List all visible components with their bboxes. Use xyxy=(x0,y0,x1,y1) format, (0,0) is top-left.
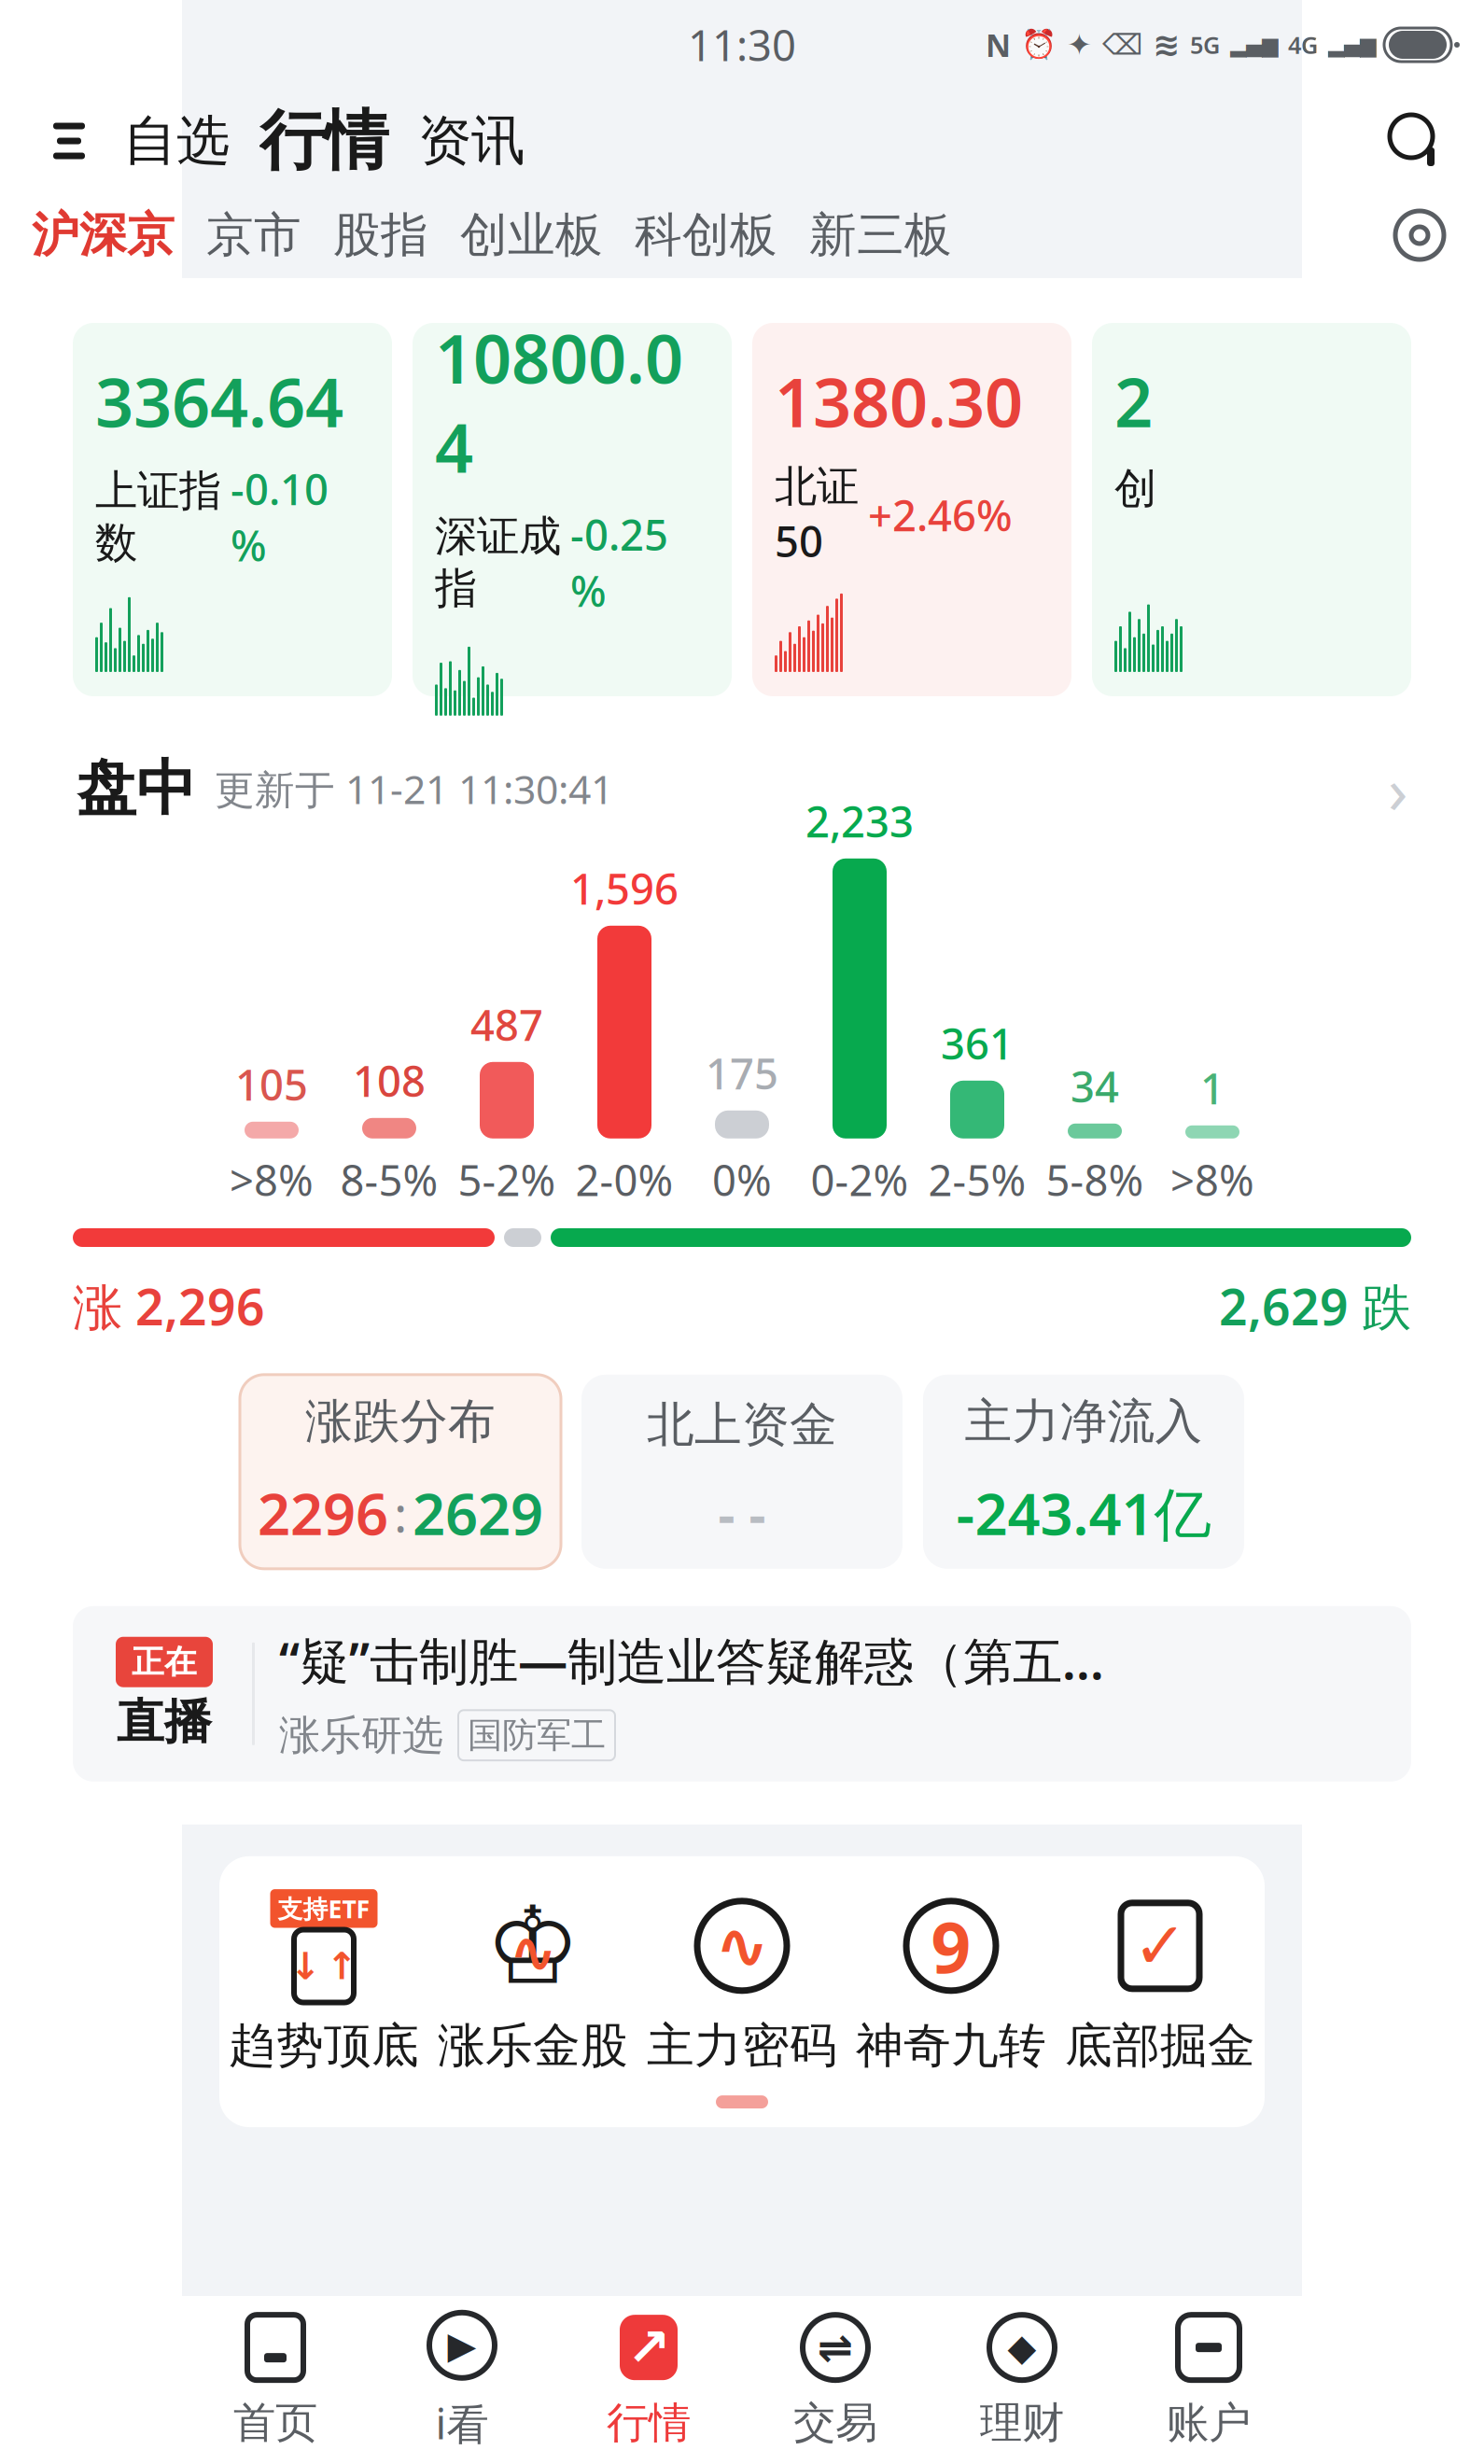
staticText: 新三板 xyxy=(809,206,952,264)
button[interactable]: 自选 xyxy=(108,108,245,174)
staticText: ≋ xyxy=(1153,26,1180,63)
staticText: › xyxy=(1388,746,1407,832)
button[interactable]: ↗ xyxy=(555,2301,742,2459)
button[interactable]: 2 xyxy=(1092,323,1411,696)
staticText: 直播 xyxy=(117,1693,212,1751)
staticText: i看 xyxy=(435,2395,489,2451)
button[interactable]: 设置 xyxy=(1387,203,1452,268)
staticText: 正在 xyxy=(132,1642,197,1682)
button[interactable]: 股指 xyxy=(333,206,428,264)
staticText: - - xyxy=(718,1478,766,1548)
staticText: 1380.30 xyxy=(775,357,1023,446)
staticText: 创 xyxy=(1114,463,1156,515)
staticText: -243.41亿 xyxy=(956,1475,1211,1551)
staticText: 股指 xyxy=(333,206,428,264)
staticText: 34 xyxy=(1071,1058,1119,1114)
staticText: 2296 xyxy=(258,1475,388,1551)
button[interactable]: 涨跌分布 xyxy=(240,1375,561,1569)
button[interactable]: 3364.64 xyxy=(73,323,392,696)
staticText: 创业板 xyxy=(460,206,603,264)
staticText: ∿ xyxy=(715,1909,769,1983)
staticText: 趋势顶底 xyxy=(229,2017,419,2075)
button[interactable]: 10800.04 xyxy=(413,323,732,696)
staticText: 理财 xyxy=(980,2397,1064,2449)
staticText: 首页 xyxy=(233,2397,317,2449)
staticText: 10800.04 xyxy=(435,313,683,491)
button[interactable]: ◆ xyxy=(929,2301,1115,2459)
button[interactable]: 行情 xyxy=(245,101,403,181)
staticText: 北上资金 xyxy=(647,1396,837,1454)
button[interactable]: 搜索 xyxy=(1376,101,1456,181)
staticText: 底部掘金 xyxy=(1065,2017,1255,2075)
staticText: 京市 xyxy=(206,206,301,264)
staticText: 0% xyxy=(712,1152,772,1208)
button[interactable]: ♔ xyxy=(428,1890,637,2075)
staticText: 涨乐金股 xyxy=(438,2017,628,2075)
button[interactable]: 支持ETF xyxy=(219,1890,428,2075)
button[interactable]: 盘中 xyxy=(15,737,1469,840)
staticText: ∿ xyxy=(509,1920,557,1985)
button[interactable]: 1380.30 xyxy=(752,323,1071,696)
staticText: 108 xyxy=(353,1052,426,1109)
staticText: 支持ETF xyxy=(278,1892,370,1925)
staticText: 上证指数 xyxy=(95,465,221,569)
staticText: 487 xyxy=(470,996,543,1053)
staticText: +2.46% xyxy=(868,487,1013,543)
staticText: 主力净流入 xyxy=(965,1393,1203,1451)
staticText: 105 xyxy=(235,1056,308,1112)
staticText: ↑ xyxy=(326,1945,358,1987)
staticText: N xyxy=(986,24,1011,66)
staticText: 资讯 xyxy=(418,108,525,174)
staticText: ⌫ xyxy=(1102,29,1142,61)
button[interactable]: 资讯 xyxy=(403,108,539,174)
staticText: -0.10% xyxy=(231,461,329,573)
button[interactable]: 科创板 xyxy=(635,206,777,264)
staticText: 5G xyxy=(1190,29,1220,60)
button[interactable]: 创业板 xyxy=(460,206,603,264)
staticText: ✦ xyxy=(1067,28,1092,62)
button[interactable]: 沪深京 xyxy=(32,206,175,264)
staticText: 2629 xyxy=(413,1475,543,1551)
staticText: >8% xyxy=(230,1152,314,1208)
staticText: 自选 xyxy=(123,108,230,174)
staticText: : xyxy=(394,1480,407,1546)
button[interactable]: 正在 xyxy=(73,1606,1411,1782)
button[interactable]: ⇌ xyxy=(742,2301,929,2459)
staticText: 5-8% xyxy=(1046,1152,1144,1208)
button[interactable]: 菜单 xyxy=(30,102,108,180)
staticText: 更新于 11-21 11:30:41 xyxy=(215,762,613,815)
button[interactable]: ∿ xyxy=(637,1890,847,2075)
staticText: 361 xyxy=(941,1015,1014,1071)
staticText: 沪深京 xyxy=(32,206,175,264)
button[interactable]: 京市 xyxy=(206,206,301,264)
button[interactable]: 首页 xyxy=(182,2301,369,2459)
staticText: ↓ xyxy=(290,1945,322,1987)
staticText: 深证成指 xyxy=(435,510,561,614)
staticText: 2-5% xyxy=(928,1152,1026,1208)
staticText: 账户 xyxy=(1167,2397,1251,2449)
staticText: 行情 xyxy=(607,2397,691,2449)
staticText: 4G xyxy=(1288,29,1318,60)
staticText: 交易 xyxy=(793,2397,877,2449)
staticText: >8% xyxy=(1170,1152,1254,1208)
staticText: 1,596 xyxy=(570,860,679,916)
staticText: ⏰ xyxy=(1021,28,1057,61)
button[interactable]: 北上资金 xyxy=(581,1375,903,1569)
button[interactable]: 账户 xyxy=(1115,2301,1302,2459)
staticText: 主力密码 xyxy=(647,2017,837,2075)
staticText: 行情 xyxy=(259,101,388,181)
staticText: 科创板 xyxy=(635,206,777,264)
staticText: 2 xyxy=(1114,357,1153,446)
staticText: 2,629 跌 xyxy=(1219,1273,1411,1339)
button[interactable]: 9 xyxy=(847,1890,1056,2075)
staticText: 175 xyxy=(706,1045,778,1101)
staticText: ▂▄▆ xyxy=(1328,33,1376,57)
staticText: ▂▄▆ xyxy=(1230,33,1278,57)
staticText: 涨乐研选 xyxy=(279,1710,443,1760)
button[interactable]: 新三板 xyxy=(809,206,952,264)
staticText: ◆ xyxy=(1008,2326,1036,2369)
button[interactable]: ▶ xyxy=(369,2301,555,2459)
button[interactable]: 主力净流入 xyxy=(923,1375,1244,1569)
staticText: ▶ xyxy=(448,2324,476,2366)
button[interactable]: ✓ xyxy=(1056,1890,1265,2075)
